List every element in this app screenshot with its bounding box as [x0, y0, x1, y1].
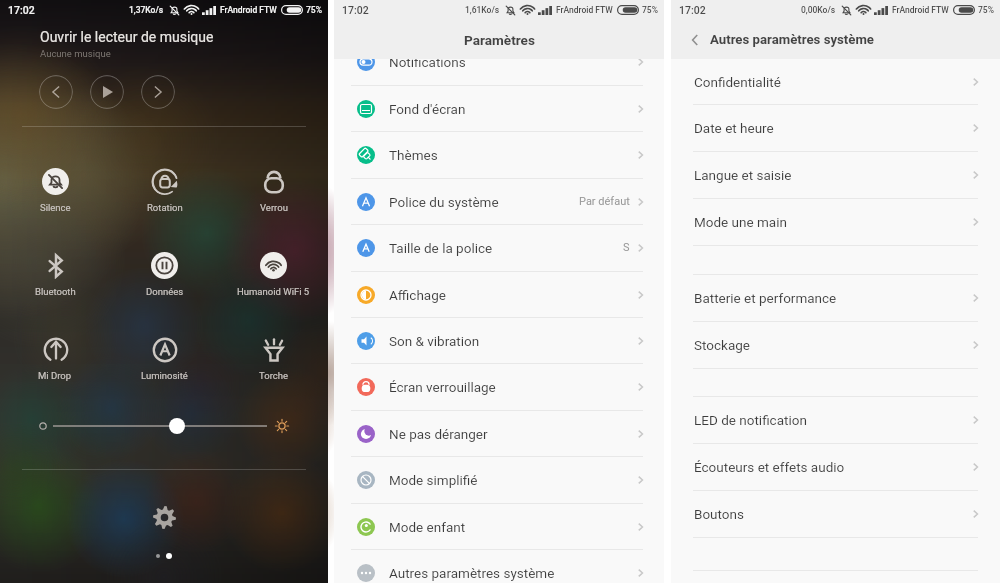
staticText: FrAndroid FTW [556, 5, 613, 15]
staticText: Mode simplifié [389, 472, 478, 488]
staticText: 17:02 [8, 4, 35, 16]
button[interactable]: Notifications [334, 38, 664, 85]
button[interactable]: Silence [0, 168, 110, 213]
button[interactable]: Mode simplifié [334, 456, 664, 503]
staticText: Boutons [694, 506, 744, 522]
staticText: S [623, 241, 630, 254]
button[interactable]: Play [90, 75, 124, 109]
button[interactable]: Stockage [671, 321, 1000, 368]
button[interactable]: Son & vibration [334, 317, 664, 364]
button[interactable]: Verrou [219, 168, 328, 213]
staticText: 0,00Ko/s [801, 5, 836, 15]
button[interactable]: Batterie et performance [671, 274, 1000, 321]
staticText: 1,37Ko/s [129, 5, 164, 15]
staticText: Notifications [389, 54, 466, 70]
button[interactable]: Police du système [334, 178, 664, 225]
button[interactable]: Mode enfant [334, 503, 664, 550]
staticText: Autres paramètres système [389, 565, 555, 581]
button[interactable]: Fond d'écran [334, 85, 664, 132]
button[interactable]: Luminosité [110, 336, 219, 381]
staticText: FrAndroid FTW [220, 5, 277, 15]
staticText: Mode enfant [389, 519, 466, 535]
button[interactable]: Rotation [110, 168, 219, 213]
staticText: Date et heure [694, 120, 774, 136]
button[interactable]: Back [685, 30, 705, 50]
staticText: Aucune musique [40, 48, 111, 59]
staticText: Humanoid WiFi 5 [237, 286, 310, 297]
button[interactable]: Écouteurs et effets audio [671, 443, 1000, 490]
staticText: Stockage [694, 337, 750, 353]
button[interactable]: Humanoid WiFi 5 [219, 252, 328, 297]
staticText: Paramètres [464, 32, 535, 48]
staticText: Langue et saisie [694, 167, 792, 183]
staticText: Écouteurs et effets audio [694, 459, 845, 475]
staticText: Données [146, 286, 184, 297]
staticText: 75% [642, 5, 658, 15]
button[interactable]: Ne pas déranger [334, 410, 664, 457]
staticText: Batterie et performance [694, 290, 837, 306]
staticText: Affichage [389, 287, 446, 303]
staticText: Torche [259, 370, 289, 381]
button[interactable]: Bluetooth [0, 252, 110, 297]
staticText: 1,61Ko/s [465, 5, 500, 15]
staticText: Son & vibration [389, 333, 480, 349]
button[interactable]: Confidentialité [671, 59, 1000, 104]
staticText: 17:02 [342, 4, 369, 16]
staticText: 75% [978, 5, 994, 15]
button[interactable]: Écran verrouillage [334, 363, 664, 410]
staticText: 17:02 [679, 4, 706, 16]
staticText: Autres paramètres système [710, 32, 874, 47]
staticText: Ne pas déranger [389, 426, 488, 442]
staticText: Confidentialité [694, 74, 781, 90]
staticText: FrAndroid FTW [892, 5, 949, 15]
button[interactable]: Données [110, 252, 219, 297]
staticText: Bluetooth [35, 286, 76, 297]
staticText: 75% [306, 5, 322, 15]
staticText: Écran verrouillage [389, 379, 496, 395]
staticText: Fond d'écran [389, 101, 466, 117]
staticText: Thèmes [389, 147, 438, 163]
staticText: Police du système [389, 194, 499, 210]
button[interactable]: Autres paramètres système [334, 549, 664, 583]
staticText: LED de notification [694, 412, 807, 428]
button[interactable]: Torche [219, 336, 328, 381]
button[interactable]: Date et heure [671, 104, 1000, 151]
button[interactable]: Boutons [671, 490, 1000, 537]
staticText: Mi Drop [38, 370, 72, 381]
button[interactable]: Previous [39, 75, 73, 109]
button[interactable]: Next [141, 75, 175, 109]
staticText: Ouvrir le lecteur de musique [40, 29, 214, 45]
staticText: Verrou [260, 202, 288, 213]
button[interactable]: Mode une main [671, 198, 1000, 245]
button[interactable]: Langue et saisie [671, 151, 1000, 198]
button[interactable]: Settings [153, 506, 176, 529]
button[interactable]: LED de notification [671, 396, 1000, 443]
staticText: Silence [40, 202, 71, 213]
button[interactable]: Mi Drop [0, 336, 110, 381]
staticText: Par défaut [579, 195, 630, 208]
staticText: Luminosité [141, 370, 188, 381]
staticText: Mode une main [694, 214, 787, 230]
button[interactable]: Thèmes [334, 131, 664, 178]
staticText: Rotation [147, 202, 183, 213]
button[interactable]: Taille de la police [334, 224, 664, 271]
staticText: Taille de la police [389, 240, 493, 256]
button[interactable]: Affichage [334, 271, 664, 318]
